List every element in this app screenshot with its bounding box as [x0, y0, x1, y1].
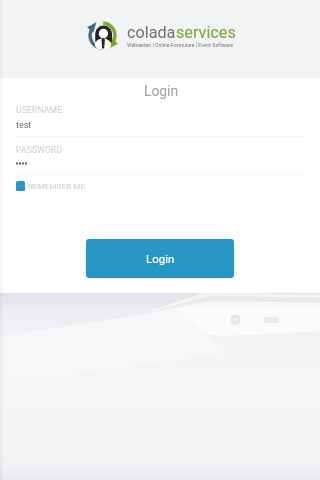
staticText: Login [144, 83, 179, 99]
staticText: Login [146, 252, 175, 265]
staticText: test [16, 120, 32, 131]
staticText: REMEMBER ME [28, 182, 86, 191]
staticText: USERNAME [16, 105, 63, 115]
staticText: colada [127, 23, 176, 42]
staticText: services [176, 23, 236, 42]
button[interactable]: REMEMBER ME [12, 178, 79, 194]
button[interactable]: Login [86, 239, 234, 278]
staticText: PASSWORD [16, 145, 63, 155]
staticText: Webseiten | Online-Formulare | Event Sof… [127, 42, 234, 48]
